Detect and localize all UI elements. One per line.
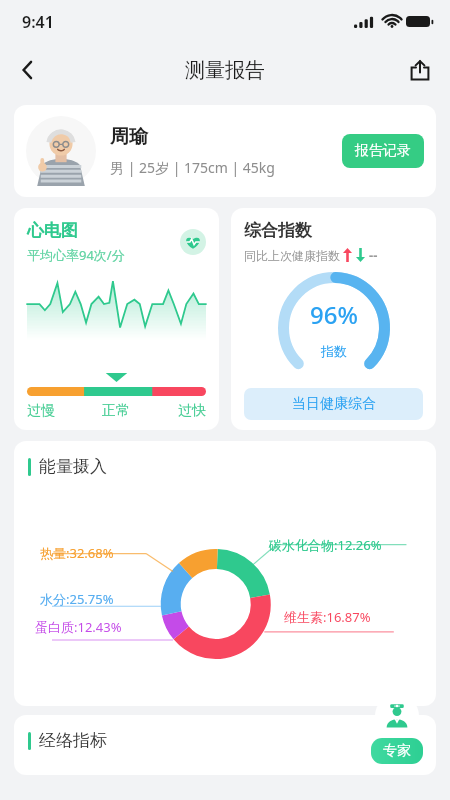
staticText: 指数 [321, 343, 347, 359]
button[interactable]: 能量摄入 [14, 441, 436, 706]
staticText: 过快 [146, 402, 206, 420]
staticText: -- [369, 246, 378, 264]
staticText: 蛋白质:12.43% [35, 618, 122, 636]
button[interactable]: 周瑜 [14, 105, 436, 197]
staticText: 同比上次健康指数 [244, 248, 340, 263]
staticText: 男 | 25岁 | 175cm | 45kg [110, 158, 275, 177]
button[interactable]: 专家 [366, 694, 428, 764]
staticText: 水分:25.75% [40, 590, 114, 608]
button[interactable]: 综合指数 [231, 208, 436, 430]
button[interactable]: 心电图 [14, 208, 219, 430]
staticText: 经络指标 [39, 730, 107, 751]
button[interactable]: 经络指标 [14, 715, 436, 775]
staticText: 平均心率94次/分 [27, 246, 125, 264]
button[interactable]: 当日健康综合 [244, 388, 423, 420]
staticText: 测量报告 [185, 58, 265, 83]
staticText: 心电图 [27, 220, 78, 241]
staticText: 周瑜 [110, 125, 148, 149]
staticText: 热量:32.68% [40, 544, 114, 562]
button[interactable]: 报告记录 [342, 134, 424, 168]
button[interactable]: Share [400, 50, 440, 90]
staticText: 当日健康综合 [292, 395, 376, 413]
staticText: 能量摄入 [39, 456, 107, 477]
staticText: 报告记录 [355, 142, 411, 160]
staticText: 综合指数 [244, 220, 312, 241]
staticText: 96% [310, 298, 358, 331]
staticText: 专家 [383, 742, 411, 760]
button[interactable]: Back [8, 50, 48, 90]
staticText: 维生素:16.87% [284, 608, 371, 626]
staticText: 碳水化合物:12.26% [269, 536, 382, 554]
staticText: 正常 [86, 402, 146, 420]
staticText: 9:41 [22, 11, 54, 33]
staticText: 过慢 [27, 402, 86, 420]
